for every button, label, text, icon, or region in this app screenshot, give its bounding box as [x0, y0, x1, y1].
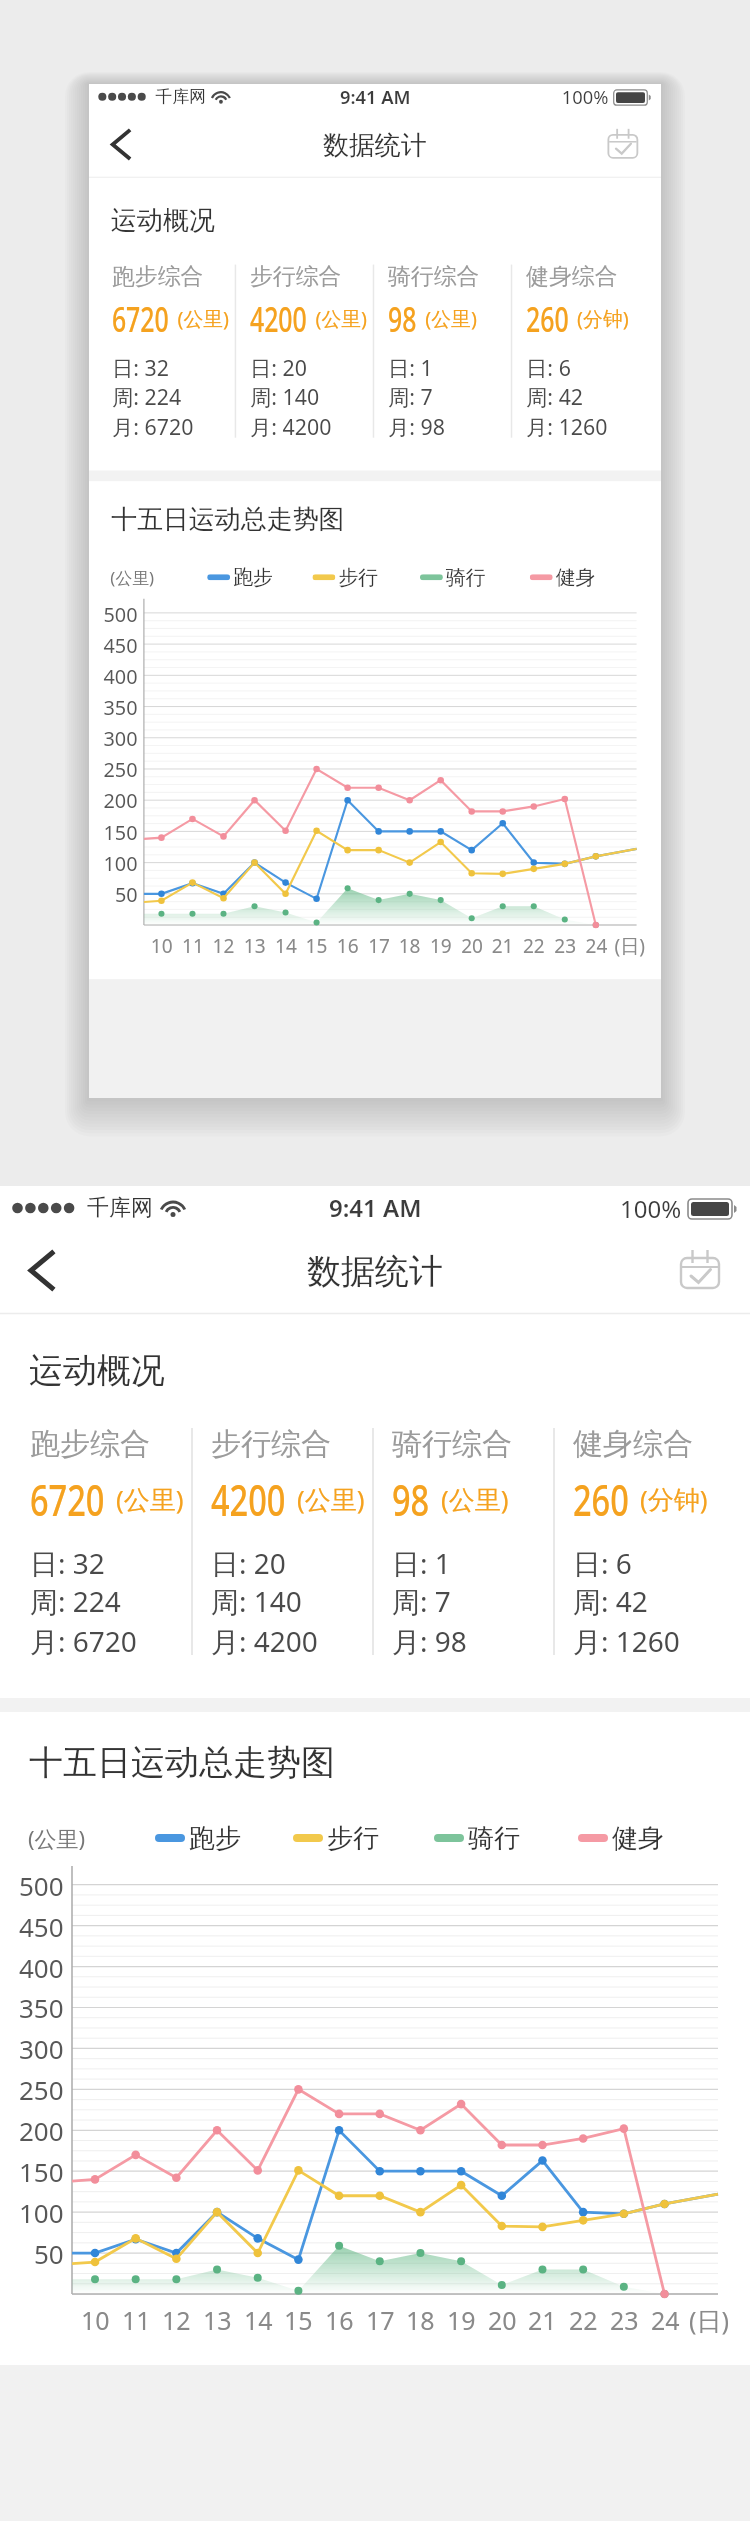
staticText: 21	[528, 2303, 557, 2337]
staticText: 健身	[556, 565, 595, 590]
staticText: 16	[337, 932, 359, 958]
staticText: 11	[182, 932, 204, 958]
staticText: 跑步	[189, 1822, 241, 1855]
staticText: 18	[406, 2303, 435, 2337]
button[interactable]	[429, 1818, 529, 1858]
staticText: 12	[162, 2303, 191, 2337]
staticText: 周: 224	[30, 1582, 121, 1620]
staticText: 400	[19, 1950, 64, 1985]
staticText: 步行综合	[211, 1425, 331, 1463]
staticText: 23	[554, 932, 576, 958]
staticText: 450	[103, 631, 138, 658]
staticText: (公里)	[297, 1481, 365, 1517]
staticText: 4200	[250, 296, 307, 342]
staticText: 12	[213, 932, 235, 958]
staticText: 日: 32	[112, 353, 169, 382]
staticText: 98	[392, 1469, 430, 1529]
staticText: 日: 6	[526, 353, 571, 382]
staticText: 骑行综合	[388, 262, 479, 291]
staticText: 9:41 AM	[340, 84, 411, 109]
button[interactable]	[97, 122, 150, 168]
staticText: (公里)	[110, 566, 155, 589]
staticText: 17	[368, 932, 390, 958]
staticText: 健身综合	[573, 1425, 693, 1463]
staticText: 300	[19, 2031, 64, 2066]
staticText: 日: 32	[30, 1544, 105, 1582]
staticText: 跑步综合	[112, 262, 203, 291]
staticText: 250	[103, 756, 138, 782]
staticText: 月: 6720	[30, 1622, 137, 1660]
staticText: 千库网	[155, 86, 206, 107]
staticText: 十五日运动总走势图	[29, 1741, 335, 1784]
staticText: 骑行	[446, 565, 486, 590]
staticText: 健身	[612, 1822, 664, 1855]
staticText: 13	[244, 932, 266, 958]
staticText: (日)	[689, 2303, 730, 2337]
staticText: 4200	[211, 1469, 286, 1529]
staticText: 13	[203, 2303, 232, 2337]
staticText: 400	[103, 663, 138, 689]
staticText: 20	[488, 2303, 517, 2337]
staticText: 骑行综合	[392, 1425, 512, 1463]
staticText: 19	[430, 932, 452, 958]
staticText: 350	[19, 1990, 64, 2025]
staticText: 月: 98	[392, 1622, 467, 1660]
staticText: 日: 20	[250, 353, 307, 382]
staticText: 100%	[620, 1192, 682, 1225]
staticText: (分钟)	[577, 305, 629, 332]
staticText: 50	[115, 881, 138, 907]
staticText: 260	[526, 296, 569, 342]
staticText: 500	[19, 1868, 64, 1903]
staticText: 日: 1	[388, 353, 433, 382]
staticText: 24	[651, 2303, 680, 2337]
staticText: 6720	[112, 296, 169, 342]
staticText: 月: 1260	[573, 1622, 680, 1660]
staticText: 10	[151, 932, 173, 958]
staticText: 20	[461, 932, 483, 958]
staticText: 周: 224	[112, 382, 181, 411]
staticText: 17	[366, 2303, 395, 2337]
staticText: (公里)	[28, 1823, 86, 1853]
staticText: (公里)	[116, 1481, 184, 1517]
staticText: 9:41 AM	[329, 1191, 422, 1224]
staticText: 周: 7	[392, 1582, 451, 1620]
staticText: 数据统计	[307, 1250, 443, 1293]
staticText: 周: 7	[388, 382, 433, 411]
staticText: (公里)	[177, 305, 229, 332]
staticText: 步行综合	[250, 262, 341, 291]
staticText: 22	[569, 2303, 598, 2337]
staticText: 150	[19, 2154, 64, 2189]
staticText: 10	[81, 2303, 110, 2337]
button[interactable]	[600, 122, 653, 168]
staticText: 100	[19, 2195, 64, 2230]
staticText: 15	[284, 2303, 313, 2337]
button[interactable]	[416, 562, 492, 592]
staticText: (日)	[614, 932, 646, 958]
staticText: 跑步综合	[30, 1425, 150, 1463]
staticText: 260	[573, 1469, 629, 1529]
button[interactable]	[288, 1818, 388, 1858]
button[interactable]	[670, 1241, 740, 1301]
button[interactable]	[203, 562, 280, 592]
staticText: 千库网	[87, 1194, 153, 1222]
staticText: (分钟)	[640, 1481, 708, 1517]
staticText: 200	[19, 2113, 64, 2148]
staticText: 24	[585, 932, 608, 958]
staticText: 16	[325, 2303, 354, 2337]
button[interactable]	[10, 1241, 80, 1301]
button[interactable]	[526, 562, 602, 592]
staticText: 18	[399, 932, 421, 958]
staticText: 6720	[30, 1469, 105, 1529]
staticText: 50	[34, 2236, 64, 2271]
staticText: 250	[19, 2072, 64, 2107]
staticText: 月: 1260	[526, 412, 608, 441]
button[interactable]	[573, 1818, 673, 1858]
staticText: 周: 42	[573, 1582, 648, 1620]
button[interactable]	[150, 1818, 250, 1858]
staticText: 运动概况	[111, 204, 215, 237]
staticText: 500	[103, 600, 138, 627]
staticText: 月: 6720	[112, 412, 193, 441]
staticText: 23	[610, 2303, 639, 2337]
staticText: 周: 42	[526, 382, 583, 411]
button[interactable]	[309, 562, 385, 592]
